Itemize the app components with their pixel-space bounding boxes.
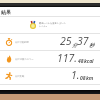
button[interactable]: 合計距離 xyxy=(0,68,100,84)
staticText: 合計距離 xyxy=(15,75,25,78)
button[interactable]: 合計活動時間 xyxy=(0,34,100,50)
button[interactable]: 合計消費カロリー xyxy=(0,51,100,67)
staticText: 最高レベルを更新しました xyxy=(39,22,66,25)
staticText: 08 xyxy=(80,75,86,82)
staticText: 秒 xyxy=(89,42,94,48)
staticText: 合計消費カロリー xyxy=(15,58,34,61)
staticText: 117. xyxy=(57,51,78,65)
staticText: kcal xyxy=(84,58,94,65)
staticText: レベル7 xyxy=(39,25,47,28)
staticText: km xyxy=(86,75,94,82)
staticText: 分 xyxy=(72,42,77,48)
staticText: 1. xyxy=(71,68,80,82)
staticText: 合計活動時間 xyxy=(15,41,29,44)
staticText: 25 xyxy=(60,34,72,48)
staticText: 37 xyxy=(77,34,89,48)
staticText: 結果 xyxy=(1,9,11,15)
button[interactable]: 最高レベルを更新しました xyxy=(0,17,100,33)
staticText: 48 xyxy=(78,58,84,65)
